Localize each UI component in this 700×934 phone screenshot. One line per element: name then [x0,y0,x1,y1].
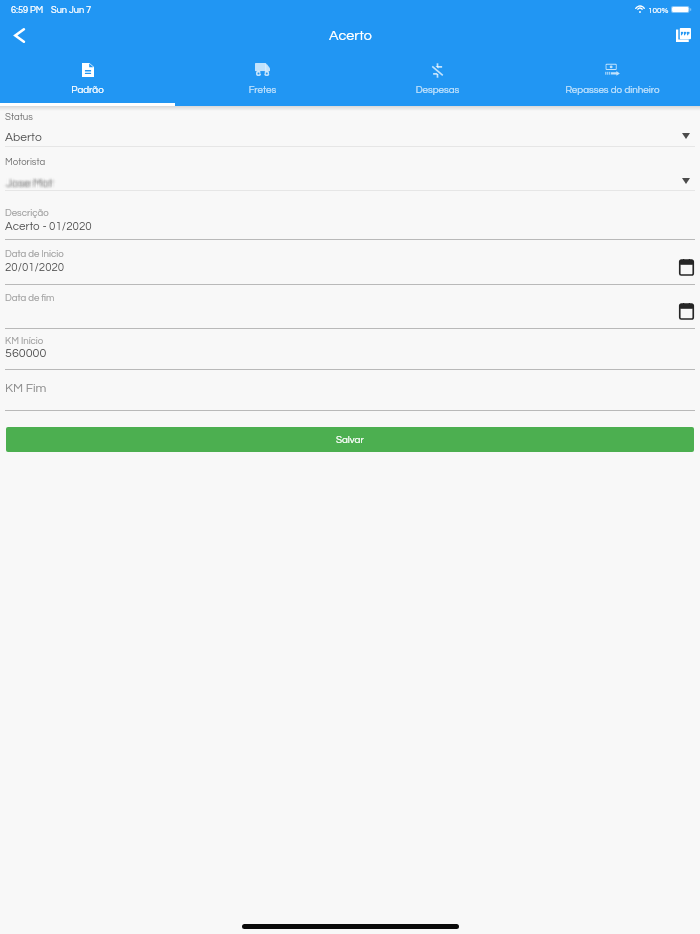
staticText: Aberto [5,131,42,143]
staticText: Jose Mot [4,175,51,187]
staticText: Jose Mot [10,176,57,188]
button[interactable]: Pick date [676,256,697,277]
staticText: Jose Mot [7,178,54,190]
staticText: Jose Mot [9,177,56,189]
button[interactable]: Pick date [676,300,697,321]
staticText: Jose Mot [4,179,51,191]
staticText: Jose Mot [5,178,52,190]
staticText: Jose Mot [6,176,53,188]
button[interactable] [0,284,700,328]
staticText: Jose Mot [4,176,51,188]
staticText: Jose Mot [6,179,53,191]
button[interactable]: Despesas [350,52,525,106]
staticText: Motorista [5,157,46,167]
button[interactable]: Repasses do dinheiro [525,52,700,106]
button[interactable]: Open menu [676,171,696,191]
staticText: Repasses do dinheiro [525,85,700,95]
staticText: Sun Jun 7 [51,5,92,14]
staticText: 6:59 PM [11,5,44,14]
staticText: Jose Mot [7,175,54,187]
button[interactable] [0,328,700,369]
staticText: Jose Mot [5,175,52,187]
staticText: Jose Mot [5,177,52,189]
staticText: Jose Mot [6,178,53,190]
staticText: Data de fim [5,293,55,303]
staticText: Jose Mot [5,179,52,191]
staticText: Jose Mot [9,178,56,190]
button[interactable] [0,369,700,410]
staticText: Acerto - 01/2020 [5,220,92,232]
staticText: Jose Mot [6,177,53,189]
button[interactable]: Export PDF [666,18,700,52]
staticText: Jose Mot [10,175,57,187]
staticText: Jose Mot [2,177,49,189]
staticText: Jose Mot [4,178,51,190]
staticText: Descrição [5,208,49,218]
staticText: Jose Mot [10,179,57,191]
staticText: 560000 [5,347,47,360]
staticText: Jose Mot [7,177,54,189]
button[interactable]: Open menu [676,126,696,146]
staticText: KM Fim [5,382,47,395]
button[interactable] [0,146,700,191]
staticText: KM Início [5,336,44,346]
staticText: Jose Mot [7,179,54,191]
button[interactable] [0,106,700,146]
staticText: Jose Mot [10,177,57,189]
staticText: Salvar [336,435,364,445]
button[interactable]: Salvar [6,427,694,452]
staticText: Fretes [175,85,350,95]
staticText: Jose Mot [10,178,57,190]
button[interactable]: Back [0,18,38,52]
staticText: Jose Mot [9,175,56,187]
staticText: Jose Mot [7,176,54,188]
staticText: Jose Mot [9,176,56,188]
staticText: Jose Mot [2,178,49,190]
staticText: Despesas [350,85,525,95]
staticText: Jose Mot [4,177,51,189]
staticText: Jose Mot [5,176,52,188]
staticText: 100% [648,6,669,14]
staticText: Acerto [329,28,372,43]
button[interactable]: Padrão [0,52,175,106]
staticText: Data de Inicio [5,249,64,259]
button[interactable]: Fretes [175,52,350,106]
staticText: Jose Mot [9,179,56,191]
button[interactable] [0,239,700,284]
staticText: Padrão [0,85,175,95]
staticText: Jose Mot [2,176,49,188]
staticText: 20/01/2020 [5,262,65,274]
staticText: Jose Mot [2,179,49,191]
button[interactable] [0,190,700,239]
staticText: Jose Mot [6,175,53,187]
staticText: Status [5,112,33,122]
staticText: Jose Mot [2,175,49,187]
